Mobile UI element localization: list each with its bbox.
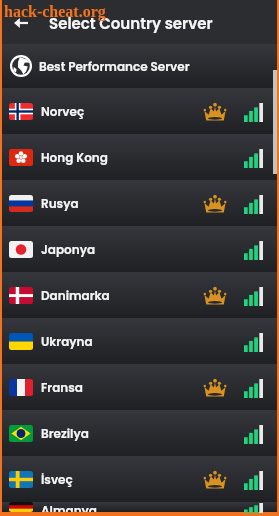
staticText: Select Country server [49,13,213,34]
button[interactable]: Danimarka [2,272,277,318]
staticText: Rusya [41,195,79,212]
button[interactable]: Hong Kong [2,134,277,180]
staticText: Danimarka [41,287,110,304]
button[interactable]: Fransa [2,364,277,410]
staticText: Ukrayna [41,333,93,350]
button[interactable]: Back [7,9,35,37]
staticText: Brezilya [41,425,89,442]
button[interactable]: Best Performance Server [2,44,277,88]
button[interactable]: İsveç [2,456,277,502]
button[interactable]: Brezilya [2,410,277,456]
staticText: Norveç [41,103,85,120]
button[interactable]: Japonya [2,226,277,272]
staticText: Almanya [41,502,97,512]
staticText: Japonya [41,241,96,258]
button[interactable]: Ukrayna [2,318,277,364]
staticText: İsveç [41,471,73,488]
button[interactable]: Almanya [2,502,277,512]
staticText: Hong Kong [41,149,108,166]
staticText: Fransa [41,379,83,396]
button[interactable]: Rusya [2,180,277,226]
staticText: Best Performance Server [39,58,190,75]
button[interactable]: Norveç [2,88,277,134]
staticText: hack-cheat.org [4,3,106,21]
